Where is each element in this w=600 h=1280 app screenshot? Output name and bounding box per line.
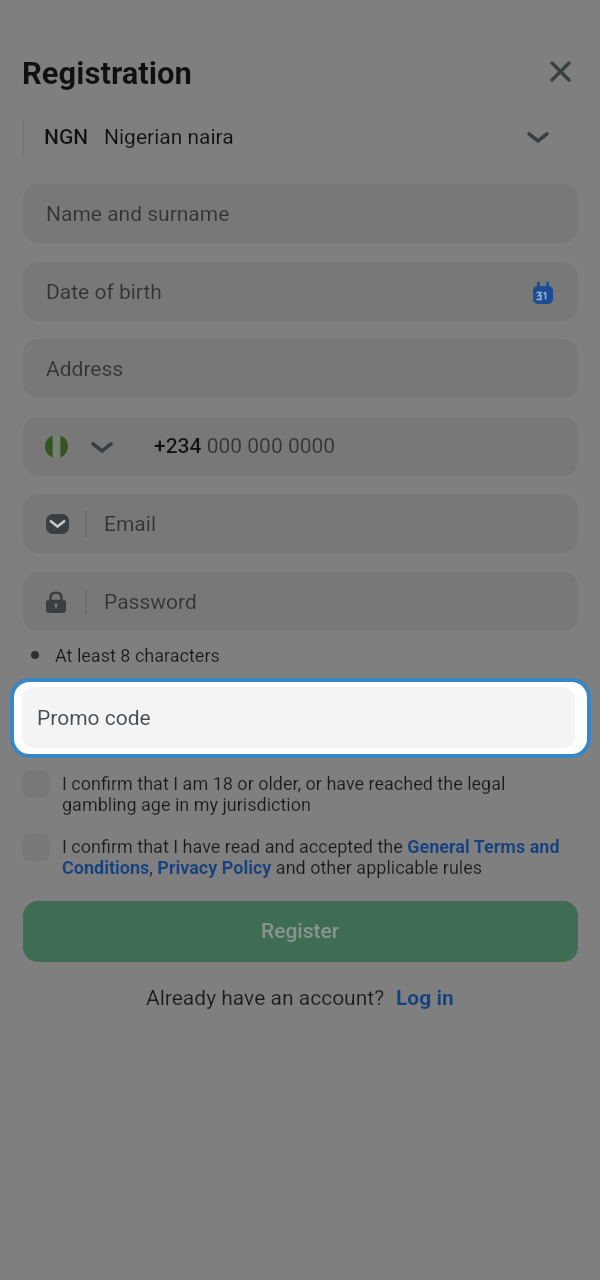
staticText: Email xyxy=(104,512,156,537)
button[interactable]: NGN xyxy=(0,110,600,166)
staticText: +234 000 000 0000 xyxy=(154,434,336,459)
button[interactable]: Address xyxy=(23,339,578,398)
staticText: Register xyxy=(261,919,340,944)
button[interactable]: Password xyxy=(23,572,578,631)
staticText: I confirm that I have read and accepted … xyxy=(62,836,578,879)
staticText: Password xyxy=(104,590,197,615)
button[interactable]: Close xyxy=(538,49,583,94)
button[interactable]: I confirm that I have read and accepted … xyxy=(22,833,578,876)
staticText: Date of birth xyxy=(46,280,162,305)
staticText: NGN xyxy=(44,125,89,150)
staticText: Promo code xyxy=(37,706,151,731)
button[interactable]: Promo code xyxy=(14,682,587,754)
staticText: I confirm that I am 18 or older, or have… xyxy=(62,773,578,816)
button[interactable]: +234 000 000 0000 xyxy=(23,417,578,476)
staticText: Nigerian naira xyxy=(104,125,234,150)
staticText: Already have an account? xyxy=(146,986,385,1011)
staticText: Registration xyxy=(22,55,192,91)
staticText: Name and surname xyxy=(46,202,230,227)
staticText: Address xyxy=(46,357,124,382)
staticText: At least 8 characters xyxy=(55,645,220,666)
button[interactable]: Register xyxy=(23,901,578,962)
button[interactable]: Name and surname xyxy=(23,184,578,243)
button[interactable]: Log in xyxy=(396,986,454,1011)
button[interactable]: Email xyxy=(23,494,578,553)
button[interactable]: Date of birth xyxy=(23,262,578,321)
button[interactable]: I confirm that I am 18 or older, or have… xyxy=(22,770,578,813)
